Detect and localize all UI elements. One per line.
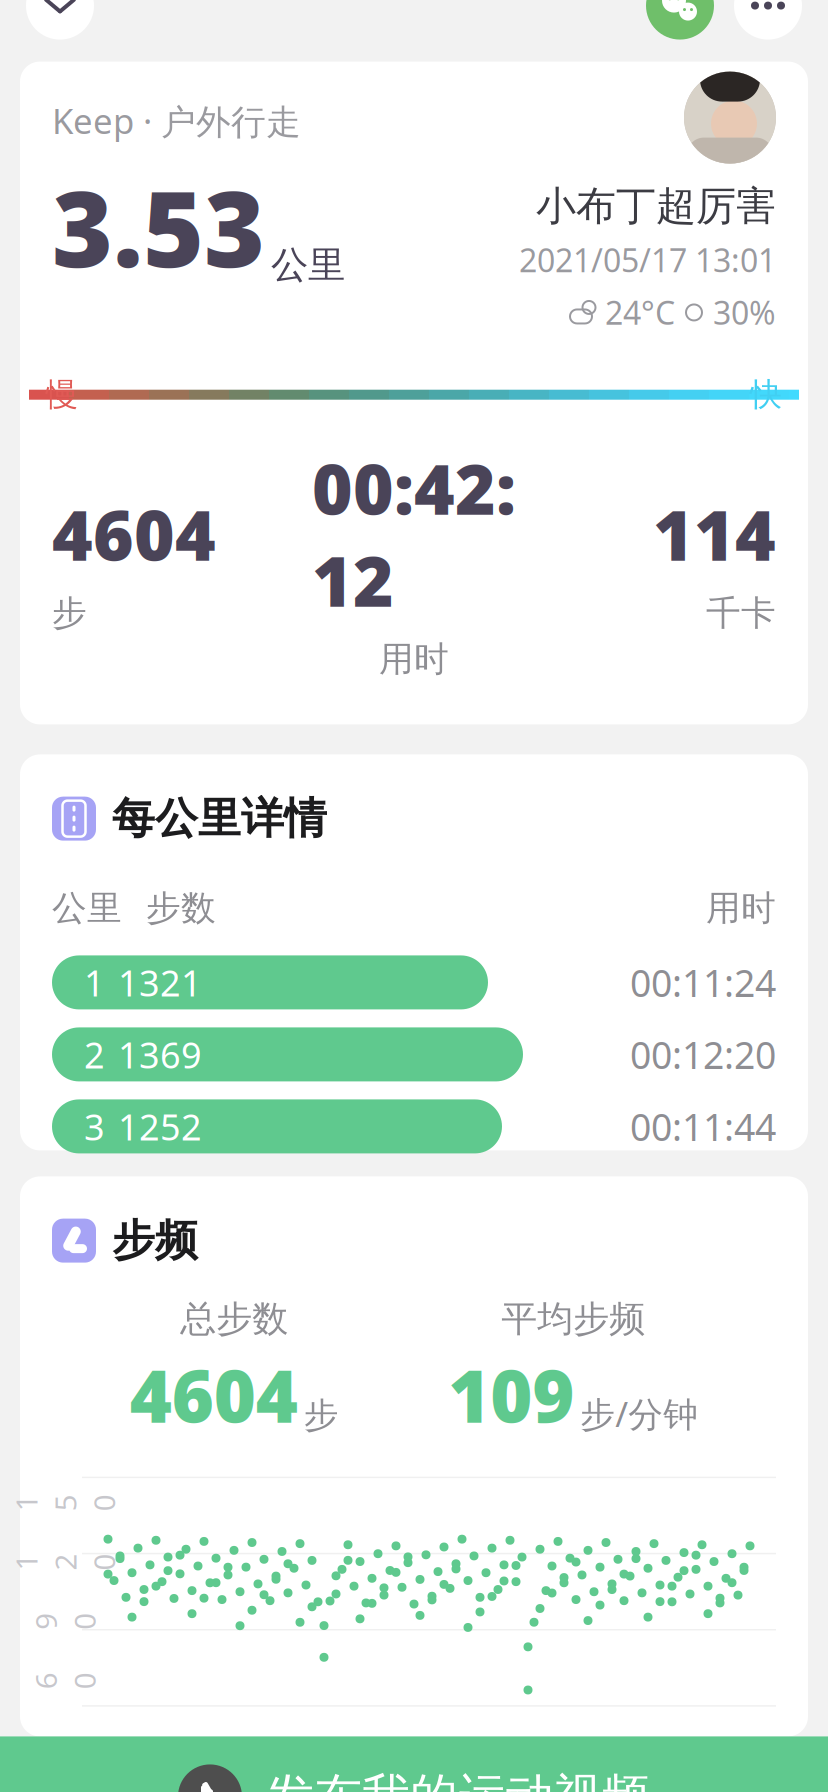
- button[interactable]: Collapse: [26, 0, 94, 40]
- staticText: 小布丁超厉害: [536, 182, 776, 231]
- staticText: 00:11:44: [630, 1102, 776, 1151]
- staticText: 00:12:20: [630, 1030, 776, 1079]
- staticText: 步: [304, 1394, 339, 1437]
- staticText: 00:11:24: [630, 958, 776, 1007]
- staticText: 千卡: [706, 592, 776, 634]
- button[interactable]: Share to WeChat: [646, 0, 714, 40]
- staticText: 4604: [130, 1347, 298, 1443]
- staticText: 90: [56, 1582, 73, 1660]
- staticText: 步/分钟: [580, 1391, 698, 1437]
- staticText: 30%: [713, 291, 776, 334]
- staticText: 109: [448, 1347, 574, 1443]
- staticText: 用时: [379, 638, 449, 680]
- staticText: 发布我的运动视频: [266, 1767, 650, 1792]
- staticText: 用时: [706, 887, 776, 929]
- staticText: 快: [750, 375, 782, 414]
- staticText: 1321: [118, 958, 202, 1006]
- staticText: 24°C: [605, 291, 675, 334]
- staticText: 4604: [52, 488, 216, 580]
- staticText: 1369: [118, 1030, 202, 1078]
- staticText: 3: [84, 1102, 105, 1150]
- staticText: 步数: [146, 887, 216, 929]
- staticText: 1252: [118, 1102, 202, 1150]
- button[interactable]: 发布我的运动视频: [0, 1736, 828, 1792]
- staticText: 2021/05/17 13:01: [519, 239, 776, 281]
- staticText: 公里: [52, 887, 122, 929]
- staticText: 1: [84, 958, 105, 1006]
- staticText: 平均步频: [501, 1297, 645, 1341]
- staticText: 120: [56, 1504, 73, 1620]
- staticText: 2: [84, 1030, 105, 1078]
- staticText: 114: [653, 488, 776, 580]
- staticText: Keep · 户外行走: [52, 98, 301, 144]
- staticText: 00:42:12: [312, 442, 516, 626]
- staticText: 150: [56, 1444, 73, 1561]
- staticText: 步频: [112, 1214, 198, 1267]
- staticText: 60: [56, 1642, 73, 1720]
- staticText: 3.53: [52, 158, 265, 296]
- staticText: 慢: [46, 375, 78, 414]
- staticText: 步: [52, 592, 87, 634]
- staticText: 公里: [271, 242, 345, 288]
- staticText: 总步数: [180, 1297, 288, 1341]
- button[interactable]: More options: [734, 0, 802, 40]
- staticText: 每公里详情: [112, 792, 327, 845]
